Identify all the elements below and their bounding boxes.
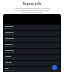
staticText: Vitamin D [5,31,14,33]
staticText: Melatonin [5,49,14,51]
staticText: 20:00 - 1 pill [5,69,14,71]
staticText: 12:00 - 2 pills [5,39,15,41]
button[interactable]: Aspirin [4,55,60,60]
button[interactable]: Zinc [4,67,60,72]
button[interactable]: Vitamin D [4,31,60,36]
button[interactable]: Melatonin [4,49,60,54]
button[interactable]: Add [52,65,57,70]
staticText: 07:15 - 1 pill [5,57,14,59]
staticText: Repeat pills [0,2,64,6]
staticText: 09:30 - 1 pill [5,33,14,35]
staticText: Calcium [5,61,12,63]
button[interactable]: Ibuprofen [4,25,60,30]
staticText: 22:00 - 1 pill [5,51,14,53]
button[interactable]: Calcium [4,61,60,66]
button[interactable]: Metformin [4,37,60,42]
staticText: Aspirin [5,55,11,57]
staticText: A simple medication reminder that keeps … [1,7,63,13]
button[interactable]: Omega 3 [4,43,60,48]
staticText: 18:00 - 1 pill [5,45,14,47]
staticText: Metformin [5,37,14,39]
staticText: Ibuprofen [5,25,14,27]
staticText: 13:00 - 2 pills [5,63,15,65]
staticText: Zinc [5,67,9,69]
staticText: 08:00 - 1 pill [5,27,14,29]
staticText: Omega 3 [5,43,13,45]
